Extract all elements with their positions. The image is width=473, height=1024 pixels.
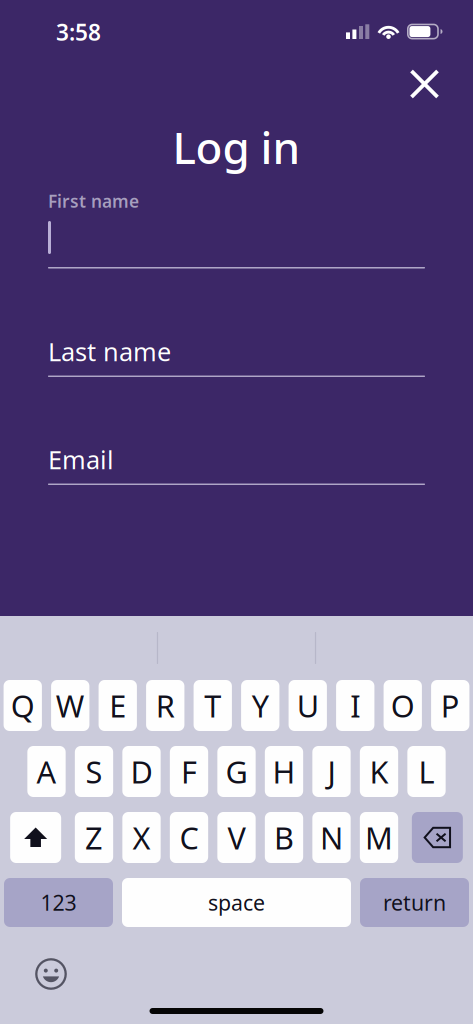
button[interactable]: return — [360, 878, 469, 927]
button[interactable]: Shift — [10, 812, 61, 863]
button[interactable]: H — [265, 746, 303, 797]
staticText: E — [109, 685, 126, 726]
staticText: D — [130, 751, 152, 792]
button[interactable]: Delete — [412, 812, 463, 863]
button[interactable]: A — [27, 746, 66, 797]
staticText: M — [365, 817, 393, 858]
button[interactable]: R — [146, 680, 184, 731]
staticText: Log in — [172, 118, 300, 176]
button[interactable]: O — [384, 680, 422, 731]
button[interactable]: X — [122, 812, 161, 863]
staticText: U — [297, 685, 319, 726]
button[interactable]: F — [170, 746, 208, 797]
button[interactable]: T — [194, 680, 232, 731]
staticText: N — [320, 817, 343, 858]
staticText: O — [391, 685, 415, 726]
staticText: Last name — [48, 335, 171, 368]
staticText: K — [369, 751, 388, 792]
staticText: Email — [48, 443, 114, 476]
button[interactable]: space — [122, 878, 351, 927]
button[interactable]: Z — [75, 812, 113, 863]
button[interactable]: D — [122, 746, 161, 797]
button[interactable]: V — [217, 812, 256, 863]
staticText: W — [56, 685, 85, 726]
staticText: Y — [252, 685, 269, 726]
staticText: J — [327, 751, 335, 792]
button[interactable]: C — [170, 812, 208, 863]
button[interactable]: L — [407, 746, 446, 797]
staticText: L — [418, 751, 434, 792]
staticText: F — [181, 751, 197, 792]
staticText: X — [132, 817, 150, 858]
staticText: Q — [11, 685, 35, 726]
button[interactable]: W — [51, 680, 89, 731]
staticText: S — [85, 751, 102, 792]
staticText: 123 — [40, 888, 76, 917]
staticText: A — [36, 751, 56, 792]
staticText: I — [350, 685, 360, 726]
button[interactable]: Y — [241, 680, 279, 731]
staticText: B — [274, 817, 294, 858]
button[interactable]: I — [336, 680, 374, 731]
button[interactable]: Emoji — [35, 958, 68, 991]
staticText: First name — [48, 189, 139, 212]
staticText: H — [272, 751, 295, 792]
button[interactable]: S — [75, 746, 113, 797]
button[interactable]: G — [217, 746, 256, 797]
button[interactable]: P — [431, 680, 469, 731]
staticText: G — [225, 751, 247, 792]
button[interactable]: E — [99, 680, 137, 731]
button[interactable]: Q — [4, 680, 42, 731]
button[interactable]: M — [360, 812, 398, 863]
staticText: T — [204, 685, 221, 726]
button[interactable]: First name — [48, 193, 425, 268]
button[interactable]: J — [312, 746, 351, 797]
button[interactable]: Close — [397, 57, 451, 111]
staticText: V — [227, 817, 245, 858]
button[interactable]: 123 — [4, 878, 113, 927]
button[interactable]: B — [265, 812, 303, 863]
button[interactable]: N — [312, 812, 351, 863]
staticText: P — [441, 685, 460, 726]
staticText: R — [156, 685, 175, 726]
staticText: space — [208, 888, 265, 917]
staticText: C — [179, 817, 198, 858]
button[interactable]: Last name — [48, 338, 425, 377]
staticText: return — [383, 888, 446, 917]
button[interactable]: K — [360, 746, 398, 797]
staticText: 3:58 — [56, 17, 101, 47]
staticText: Z — [85, 817, 103, 858]
button[interactable]: Email — [48, 446, 425, 485]
button[interactable]: U — [289, 680, 327, 731]
